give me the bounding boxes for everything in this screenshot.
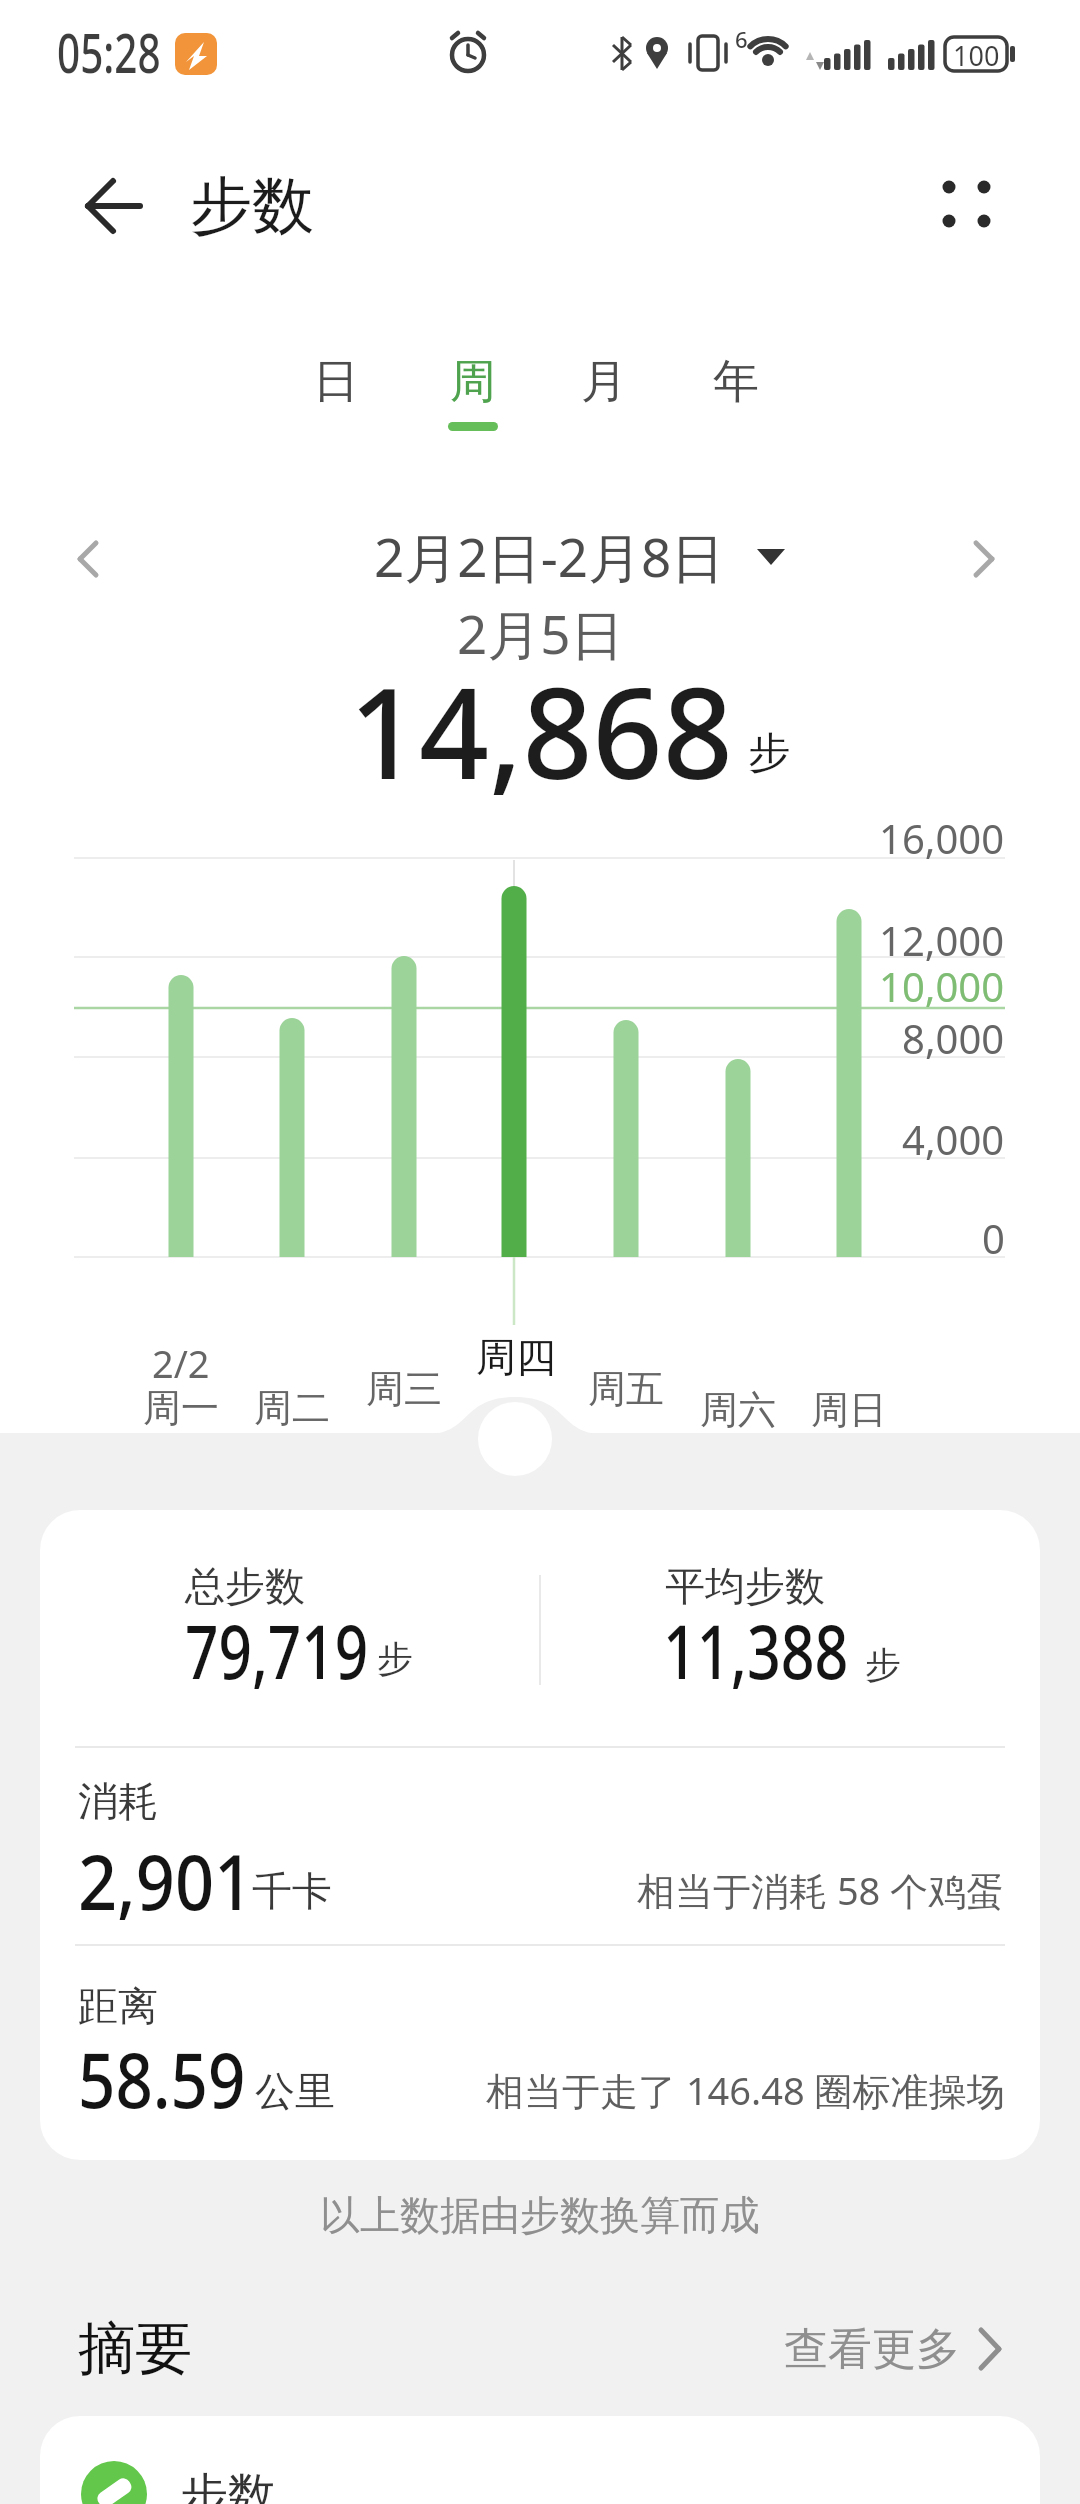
staticText: 消耗: [78, 1776, 158, 1826]
staticText: 05:28: [57, 15, 161, 89]
staticText: 周日: [811, 1386, 887, 1434]
staticText: 周: [450, 353, 496, 411]
staticText: 千卡: [252, 1866, 332, 1916]
staticText: 2月2日-2月8日: [374, 520, 725, 592]
staticText: 16,000: [879, 811, 1005, 865]
button[interactable]: [915, 158, 1015, 250]
staticText: 周五: [588, 1365, 664, 1413]
staticText: 步: [865, 1642, 901, 1687]
staticText: 步: [748, 727, 790, 780]
staticText: 以上数据由步数换算而成: [320, 2190, 760, 2240]
staticText: 2,901: [78, 1829, 253, 1933]
staticText: 14,868: [349, 645, 733, 815]
button[interactable]: 日: [0, 345, 686, 418]
staticText: 相当于消耗 58 个鸡蛋: [637, 1864, 1005, 1916]
staticText: 2月5日: [457, 597, 624, 669]
staticText: 8,000: [902, 1011, 1005, 1065]
staticText: 年: [713, 353, 759, 411]
staticText: 周四: [476, 1332, 556, 1382]
staticText: 平均步数: [665, 1561, 825, 1611]
staticText: 58.59: [78, 2027, 246, 2131]
button[interactable]: [50, 520, 126, 598]
staticText: 周一: [143, 1384, 219, 1432]
staticText: 距离: [78, 1981, 158, 2031]
button[interactable]: 年: [386, 345, 1080, 418]
button[interactable]: [64, 168, 160, 244]
staticText: 79,719: [185, 1600, 368, 1701]
button[interactable]: 查看更多: [260, 2314, 960, 2384]
staticText: 周三: [366, 1365, 442, 1413]
staticText: 摘要: [78, 2313, 192, 2385]
staticText: 2/2: [152, 1337, 210, 1389]
staticText: 总步数: [185, 1561, 305, 1611]
button[interactable]: 周: [123, 345, 823, 418]
staticText: 步数: [190, 167, 314, 245]
staticText: 步数: [180, 2466, 276, 2504]
staticText: 10,000: [879, 959, 1005, 1013]
staticText: 周六: [700, 1386, 776, 1434]
staticText: 日: [313, 353, 359, 411]
staticText: 100: [953, 37, 1000, 74]
staticText: 0: [982, 1211, 1005, 1265]
button[interactable]: 总步数: [185, 1554, 885, 1618]
staticText: 查看更多: [784, 2322, 960, 2377]
staticText: 11,388: [663, 1600, 849, 1701]
button[interactable]: 月: [254, 345, 954, 418]
button[interactable]: [950, 520, 1026, 598]
staticText: 步: [377, 1636, 413, 1681]
staticText: 12,000: [879, 913, 1005, 967]
staticText: 4,000: [902, 1112, 1005, 1166]
staticText: 月: [581, 353, 627, 411]
staticText: 公里: [255, 2066, 335, 2116]
button[interactable]: 2月2日-2月8日: [199, 514, 899, 598]
button[interactable]: [40, 2416, 1040, 2504]
staticText: 相当于走了 146.48 圈标准操场: [486, 2064, 1005, 2116]
staticText: 周二: [254, 1384, 330, 1432]
staticText: 6: [735, 24, 748, 54]
